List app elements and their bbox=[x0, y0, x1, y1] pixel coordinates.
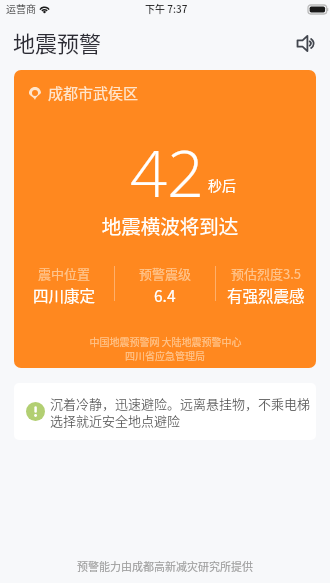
staticText: 震中位置 bbox=[38, 264, 91, 283]
staticText: 四川康定 bbox=[33, 284, 96, 306]
staticText: 中国地震预警网 大陆地震预警中心 bbox=[89, 334, 242, 348]
staticText: 秒后 bbox=[208, 175, 236, 195]
staticText: 沉着冷静，迅速避险。远离悬挂物，不乘电梯 选择就近安全地点避险 bbox=[50, 394, 311, 429]
staticText: 地震横波将到达 bbox=[19, 211, 316, 239]
staticText: 下午 7:37 bbox=[145, 1, 188, 15]
staticText: 运营商 bbox=[6, 1, 36, 15]
staticText: 预警能力由成都高新减灾研究所提供 bbox=[0, 558, 330, 574]
staticText: 成都市武侯区 bbox=[48, 82, 139, 104]
staticText: 预估烈度3.5 bbox=[231, 264, 302, 283]
button[interactable]: Sound alert toggle bbox=[292, 30, 318, 56]
staticText: 地震预警 bbox=[13, 26, 102, 58]
staticText: 有强烈震感 bbox=[227, 284, 305, 306]
staticText: 42 bbox=[130, 128, 205, 217]
staticText: 预警震级 bbox=[139, 264, 192, 283]
staticText: 四川省应急管理局 bbox=[125, 348, 205, 362]
staticText: 6.4 bbox=[154, 284, 176, 306]
button[interactable]: 沉着冷静，迅速避险。远离悬挂物，不乘电梯 选择就近安全地点避险 bbox=[14, 383, 316, 440]
